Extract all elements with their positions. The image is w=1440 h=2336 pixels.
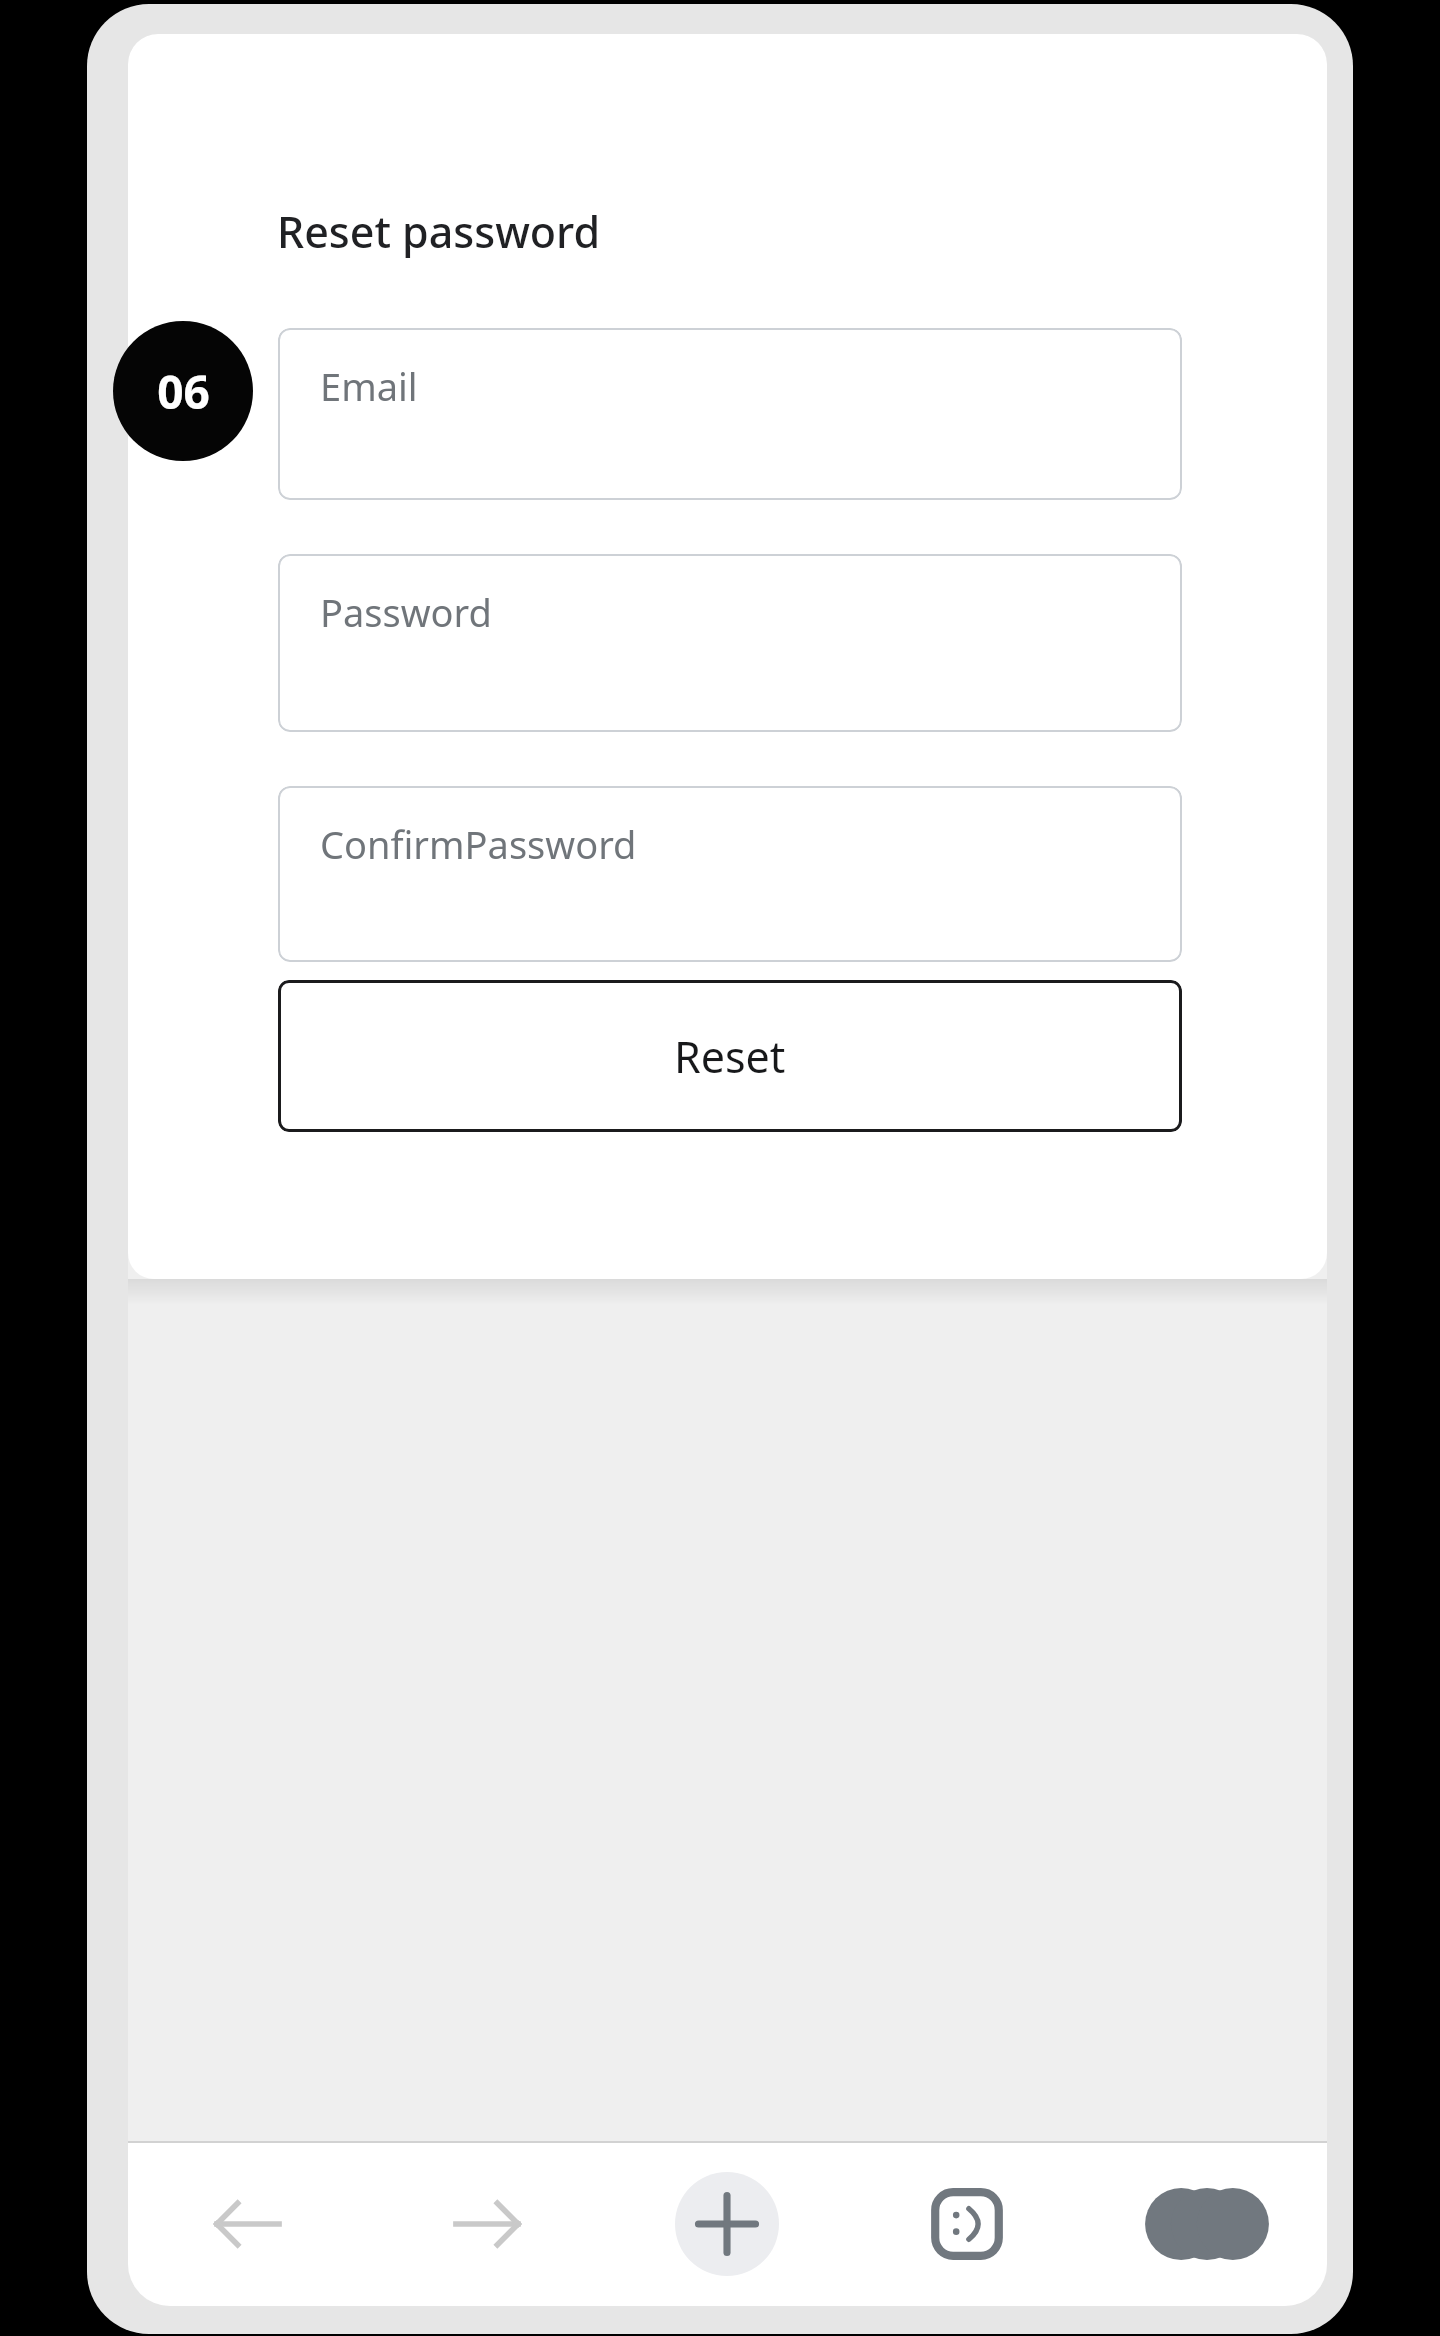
staticText: Email [320,360,418,412]
button[interactable]: Step 06 [113,321,253,461]
button[interactable]: Password [278,554,1182,732]
button[interactable]: Reset [278,980,1182,1132]
button[interactable]: Forward [367,2141,607,2306]
button[interactable]: Tabs [847,2141,1087,2306]
button[interactable]: More options [1087,2141,1327,2306]
staticText: ConfirmPassword [320,818,637,870]
staticText: Password [320,586,492,638]
button[interactable]: Email [278,328,1182,500]
button[interactable]: ConfirmPassword [278,786,1182,962]
staticText: 06 [157,360,210,423]
staticText: Reset [674,1027,786,1086]
button[interactable]: Back [128,2141,367,2306]
button[interactable]: New tab [607,2141,847,2306]
staticText: Reset password [277,202,601,261]
